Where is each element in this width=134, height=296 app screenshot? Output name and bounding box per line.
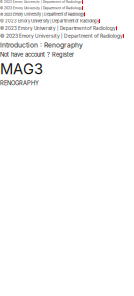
staticText: © 2023 Emory University | Department of …: [0, 18, 99, 23]
staticText: © 2023 Emory University | Department of …: [0, 6, 82, 10]
staticText: Not have account ? Register: [0, 51, 74, 58]
staticText: © 2023 Emory University | Department of …: [0, 12, 84, 16]
staticText: © 2023 Emory University | Department of …: [0, 0, 82, 4]
staticText: © 2023 Emory University | Department of …: [0, 26, 116, 31]
staticText: Introduction : Renography: [0, 41, 83, 49]
staticText: MAG3: [0, 60, 43, 78]
staticText: RENOGRAPHY: [0, 80, 39, 87]
staticText: © 2023 Emory University | Department of …: [0, 33, 123, 39]
